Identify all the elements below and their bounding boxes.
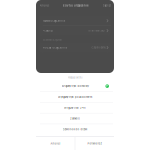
staticText: Włączny tryb 24h xyxy=(64,106,86,109)
staticText: Dzwonek do drzwi xyxy=(62,128,87,131)
button[interactable]: Przypisz xyxy=(39,26,111,35)
staticText: Włączny tryb domowy xyxy=(61,85,88,88)
staticText: Ustawienia urządzenia xyxy=(42,39,61,41)
button[interactable]: Zamknij xyxy=(36,113,114,124)
staticText: Zamknij xyxy=(70,117,80,120)
staticText: Brak lokalizacji xyxy=(88,29,105,32)
button[interactable]: Anuluj xyxy=(36,137,75,150)
staticText: Podgląd skrótu xyxy=(68,76,82,79)
staticText: Czujnik dymu xyxy=(91,46,105,49)
button[interactable]: Nazwa urządzenia xyxy=(39,16,111,25)
button[interactable]: Włączny tryb 24h xyxy=(36,102,114,113)
staticText: Rodzaj urządzenia xyxy=(42,46,66,49)
button[interactable]: Rodzaj urządzenia xyxy=(39,43,111,52)
staticText: Potwierdź xyxy=(88,142,102,145)
staticText: Edytuj urządzenie xyxy=(63,4,89,7)
staticText: Anuluj xyxy=(39,4,49,7)
staticText: Zapisz xyxy=(102,4,110,7)
staticText: Nazwa urządzenia xyxy=(42,19,64,22)
staticText: Przypisz xyxy=(42,29,52,32)
button[interactable]: Wyłączny tryb poza domem xyxy=(36,92,114,102)
staticText: Wyłączny tryb poza domem xyxy=(58,95,92,98)
button[interactable]: Dzwonek do drzwi xyxy=(36,124,114,134)
button[interactable]: Włączny tryb domowy xyxy=(36,81,114,91)
button[interactable]: Anuluj xyxy=(36,0,51,10)
button[interactable]: Zapisz xyxy=(100,0,114,10)
staticText: Anuluj xyxy=(50,142,60,145)
button[interactable]: Potwierdź xyxy=(75,137,114,150)
